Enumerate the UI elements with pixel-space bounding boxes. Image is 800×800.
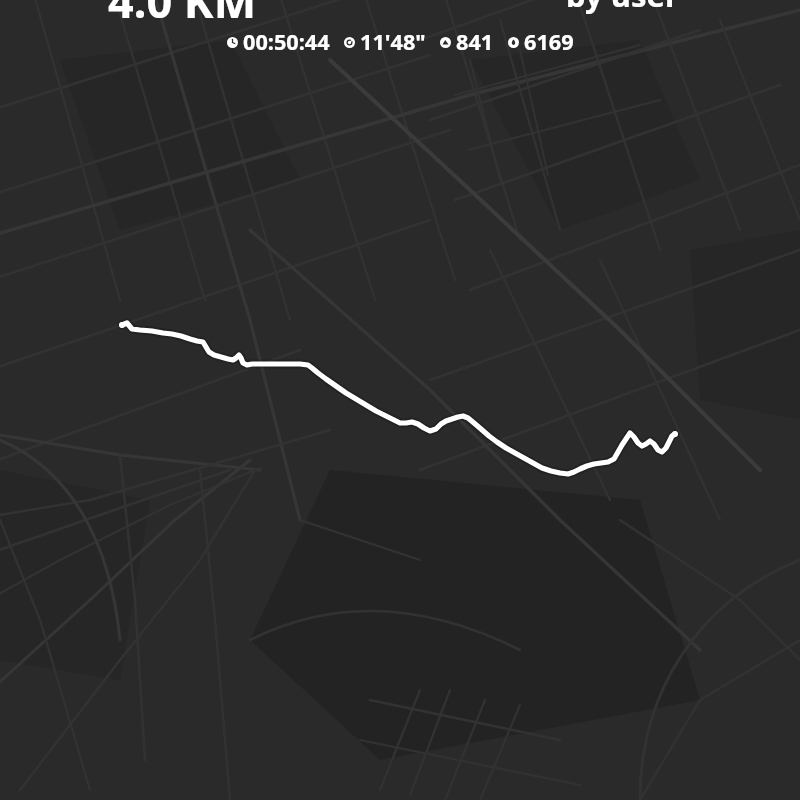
button[interactable]: 4.0 KM <box>108 0 257 31</box>
button[interactable]: Pace <box>337 27 433 57</box>
staticText: by user <box>566 0 679 16</box>
button[interactable]: Duration <box>220 27 337 57</box>
staticText: 00:50:44 <box>243 27 330 57</box>
staticText: 6169 <box>524 27 574 57</box>
staticText: 4.0 KM <box>108 0 257 31</box>
button[interactable]: Calories <box>501 27 581 57</box>
staticText: 11'48" <box>360 27 426 57</box>
staticText: 841 <box>456 27 494 57</box>
button[interactable]: Elevation <box>433 27 501 57</box>
button[interactable]: by user <box>566 0 679 16</box>
